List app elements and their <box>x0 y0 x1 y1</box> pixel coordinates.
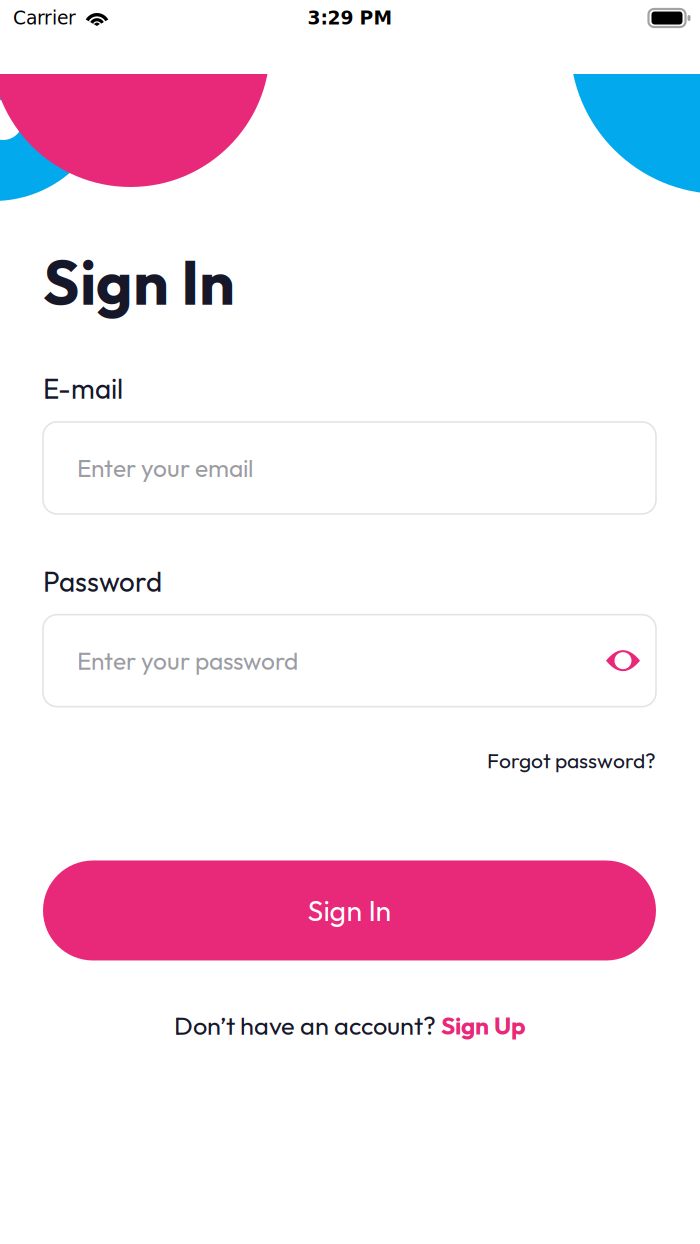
button[interactable]: Sign Up <box>441 1010 526 1041</box>
button[interactable]: Forgot password? <box>487 747 656 774</box>
staticText: Sign Up <box>441 1010 526 1041</box>
button[interactable]: Show password <box>606 650 640 672</box>
staticText: Don’t have an account? <box>174 1009 441 1041</box>
button[interactable]: Sign In <box>43 860 656 960</box>
staticText: 3:29 PM <box>307 7 392 29</box>
staticText: Sign In <box>43 242 235 321</box>
staticText: Password <box>43 564 162 599</box>
staticText: Forgot password? <box>487 747 656 774</box>
staticText: Sign In <box>307 892 391 928</box>
staticText: Enter your email <box>77 452 253 483</box>
staticText: E-mail <box>43 371 123 406</box>
staticText: Enter your password <box>77 645 298 676</box>
staticText: Carrier <box>13 7 76 29</box>
